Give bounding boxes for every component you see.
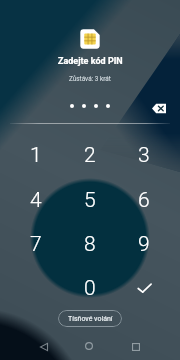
staticText: 7 [30,232,42,257]
button[interactable]: Recents [128,339,144,355]
button[interactable]: Backspace [148,98,169,119]
staticText: 3 [138,143,150,168]
staticText: Tísňové volání [68,315,113,323]
staticText: 9 [138,232,150,257]
button[interactable]: 5 [63,178,117,222]
button[interactable]: 4 [9,178,63,222]
button[interactable]: 0 [63,266,117,310]
staticText: 0 [84,276,96,301]
button[interactable]: Back [36,339,52,355]
staticText: Zůstává: 3 krát [69,75,111,83]
staticText: 4 [30,188,42,213]
button[interactable]: 8 [63,222,117,266]
staticText: Zadejte kód PIN [58,56,123,67]
staticText: 6 [138,188,150,213]
button[interactable]: Home [81,338,97,354]
button[interactable]: 7 [9,222,63,266]
staticText: 2 [84,143,96,168]
staticText: 1 [30,143,42,168]
button[interactable]: Tísňové volání [58,310,122,327]
button[interactable]: 9 [117,222,171,266]
button[interactable]: 1 [9,133,63,177]
staticText: 5 [84,188,96,213]
button[interactable]: Confirm [117,266,171,310]
button[interactable]: 6 [117,178,171,222]
staticText: 8 [84,232,96,257]
button[interactable]: 3 [117,133,171,177]
button[interactable]: 2 [63,133,117,177]
